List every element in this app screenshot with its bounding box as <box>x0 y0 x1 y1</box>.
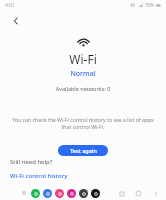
button[interactable]: Camera <box>79 189 88 198</box>
button[interactable]: Apps <box>22 191 26 195</box>
staticText: Available networks: 0 <box>0 85 166 92</box>
staticText: You can check the Wi-Fi control history … <box>8 116 158 131</box>
staticText: Wi-Fi <box>0 51 166 67</box>
button[interactable]: Recent apps <box>117 189 126 198</box>
staticText: 46 <box>130 2 136 8</box>
button[interactable]: Test again <box>58 145 108 156</box>
button[interactable]: Instagram <box>67 189 76 198</box>
staticText: Still need help? <box>10 158 53 166</box>
staticText: 70% <box>145 2 154 8</box>
staticText: Test again <box>70 147 97 154</box>
staticText: 4:01 <box>5 2 15 9</box>
button[interactable]: Back <box>151 189 160 198</box>
staticText: Normal <box>0 69 166 79</box>
staticText: Wi-Fi control history <box>10 172 68 180</box>
button[interactable]: Phone <box>31 189 40 198</box>
button[interactable]: Wi-Fi control history <box>10 172 68 180</box>
button[interactable]: Browser <box>91 189 100 198</box>
button[interactable]: Gallery <box>55 189 64 198</box>
button[interactable]: Messages <box>43 189 52 198</box>
button[interactable]: Home <box>134 189 143 198</box>
button[interactable]: Back <box>7 12 24 29</box>
